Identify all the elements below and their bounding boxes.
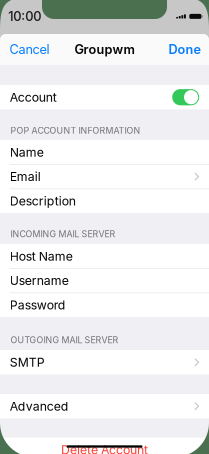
staticText: Account — [10, 90, 57, 105]
button[interactable]: Description — [0, 189, 209, 213]
staticText: Done — [168, 42, 200, 57]
button[interactable]: Email — [0, 164, 209, 189]
button[interactable]: Password — [0, 293, 209, 317]
button[interactable]: Cancel — [0, 34, 58, 65]
staticText: 10:00 — [8, 9, 41, 24]
staticText: Description — [10, 194, 76, 208]
staticText: SMTP — [10, 355, 45, 370]
button[interactable]: SMTP — [0, 350, 209, 374]
staticText: Delete Account — [61, 442, 148, 454]
staticText: Password — [10, 298, 66, 312]
button[interactable]: Advanced — [0, 394, 209, 418]
button[interactable]: Host Name — [0, 244, 209, 268]
staticText: Host Name — [10, 249, 73, 264]
button[interactable]: Account enabled — [172, 89, 199, 105]
staticText: POP ACCOUNT INFORMATION — [11, 125, 141, 136]
staticText: Groupwm — [74, 42, 134, 57]
staticText: Cancel — [9, 42, 49, 57]
staticText: Username — [10, 273, 69, 288]
button[interactable]: Done — [159, 34, 209, 65]
staticText: Email — [10, 169, 41, 184]
staticText: OUTGOING MAIL SERVER — [11, 335, 119, 345]
staticText: Name — [10, 145, 44, 160]
button[interactable]: Name — [0, 140, 209, 164]
staticText: Advanced — [10, 399, 69, 414]
button[interactable]: Account — [0, 85, 209, 109]
staticText: INCOMING MAIL SERVER — [11, 229, 116, 239]
button[interactable]: Username — [0, 268, 209, 293]
button[interactable]: Delete Account — [0, 437, 209, 454]
